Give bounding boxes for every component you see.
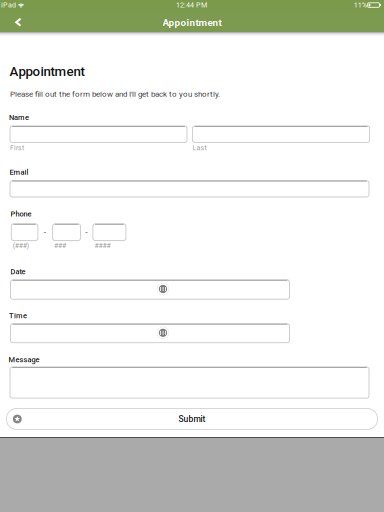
button[interactable]: Submit xyxy=(6,408,378,429)
staticText: - xyxy=(44,227,46,237)
staticText: Last xyxy=(193,144,207,152)
staticText: iPad xyxy=(1,1,16,9)
staticText: Please fill out the form below and I'll … xyxy=(10,89,220,99)
staticText: Message xyxy=(8,355,39,364)
staticText: Appointment xyxy=(162,17,221,28)
staticText: 12:44 PM xyxy=(176,1,207,9)
staticText: Email xyxy=(9,168,28,176)
staticText: ### xyxy=(54,241,66,250)
staticText: #### xyxy=(94,241,110,250)
staticText: (###) xyxy=(13,241,29,250)
staticText: Name xyxy=(9,113,29,122)
button[interactable]: Back xyxy=(1,13,35,31)
staticText: First xyxy=(10,144,24,152)
staticText: Submit xyxy=(178,414,205,424)
staticText: Date xyxy=(10,267,25,276)
staticText: Phone xyxy=(10,210,31,218)
staticText: 11% xyxy=(354,1,367,9)
staticText: Appointment xyxy=(9,64,84,79)
staticText: Time xyxy=(9,311,27,320)
staticText: - xyxy=(85,227,87,237)
